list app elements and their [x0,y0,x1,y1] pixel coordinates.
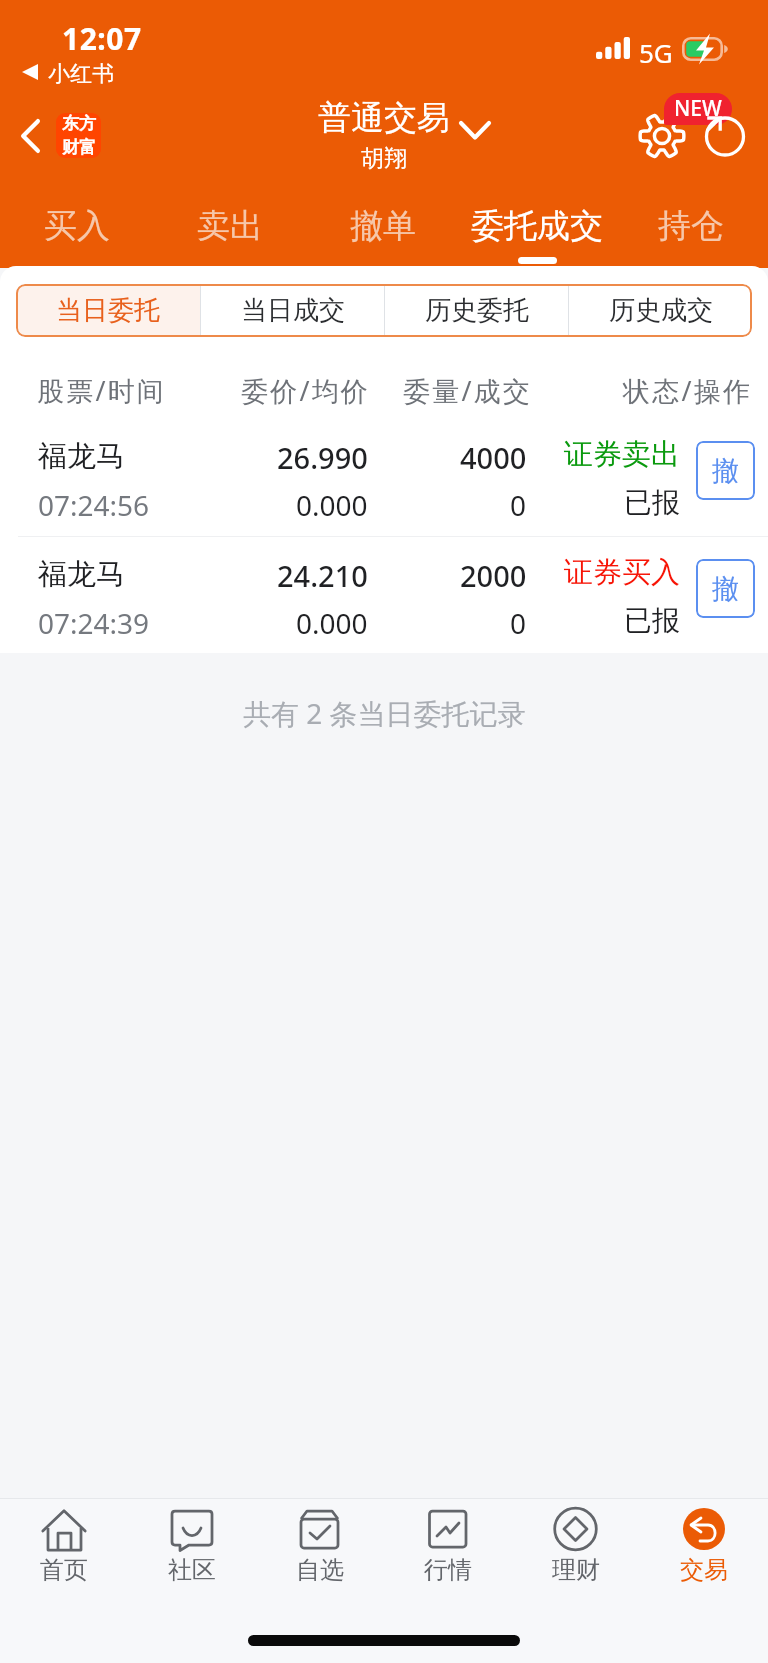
staticText: 12:07 [62,18,142,59]
button[interactable]: 历史成交 [569,284,752,337]
button[interactable]: 普通交易 [318,97,450,139]
staticText: 撤 [712,572,739,606]
button[interactable]: 撤单 [306,199,460,269]
staticText: 历史委托 [425,294,529,327]
staticText: 已报 [624,485,680,520]
staticText: 撤 [712,454,739,488]
staticText: 状态/操作 [623,372,753,409]
staticText: 4000 [460,438,527,477]
button[interactable]: 持仓 [614,199,768,269]
staticText: 卖出 [197,205,263,247]
button[interactable]: Exit account [700,111,750,161]
button[interactable]: 卖出 [153,199,306,269]
staticText: 福龙马 [38,438,125,475]
staticText: 东方 [62,113,96,134]
staticText: 当日委托 [56,294,160,327]
staticText: 24.210 [277,556,368,595]
button[interactable]: 当日委托 [16,284,200,337]
button[interactable]: 自选 [256,1498,384,1598]
staticText: 小红书 [48,60,114,88]
button[interactable]: 首页 [0,1498,128,1598]
staticText: NEW [674,94,722,123]
staticText: 2000 [460,556,527,595]
staticText: 证券卖出 [564,436,680,473]
staticText: 0 [510,604,527,642]
button[interactable]: Settings [636,110,688,162]
staticText: 当日成交 [241,294,345,327]
staticText: 自选 [296,1555,344,1585]
staticText: 普通交易 [318,97,450,139]
button[interactable]: 福龙马 [0,418,768,536]
button[interactable]: 历史委托 [385,284,568,337]
button[interactable]: 撤 [696,559,755,618]
staticText: 社区 [168,1555,216,1585]
staticText: 共有 2 条当日委托记录 [243,694,526,732]
staticText: 股票/时间 [37,372,167,409]
staticText: 07:24:56 [38,486,150,524]
staticText: 委量/成交 [403,372,533,409]
staticText: 委价/均价 [241,372,371,409]
staticText: 26.990 [277,438,368,477]
staticText: 福龙马 [38,556,125,593]
button[interactable]: 福龙马 [0,536,768,654]
staticText: 0.000 [296,604,368,642]
button[interactable]: 交易 [640,1498,768,1598]
staticText: 买入 [44,205,110,247]
button[interactable]: 社区 [128,1498,256,1598]
button[interactable]: 理财 [512,1498,640,1598]
staticText: 5G [639,35,673,70]
staticText: 持仓 [658,205,724,247]
button[interactable]: 买入 [0,199,153,269]
staticText: 交易 [680,1555,728,1585]
staticText: 0.000 [296,486,368,524]
staticText: 07:24:39 [38,604,150,642]
button[interactable]: 撤 [696,441,755,500]
staticText: 撤单 [350,205,416,247]
staticText: 财富 [62,137,96,158]
staticText: 首页 [40,1555,88,1585]
staticText: 行情 [424,1555,472,1585]
button[interactable]: 东方财富 [56,113,101,158]
button[interactable]: 行情 [384,1498,512,1598]
button[interactable]: 当日成交 [201,284,384,337]
staticText: 委托成交 [471,205,603,247]
button[interactable]: Back [6,111,55,161]
button[interactable]: 委托成交 [460,199,614,269]
staticText: 胡翔 [361,144,407,173]
staticText: 证券买入 [564,554,680,591]
staticText: 0 [510,486,527,524]
staticText: 已报 [624,603,680,638]
staticText: 理财 [552,1555,600,1585]
staticText: 历史成交 [609,294,713,327]
